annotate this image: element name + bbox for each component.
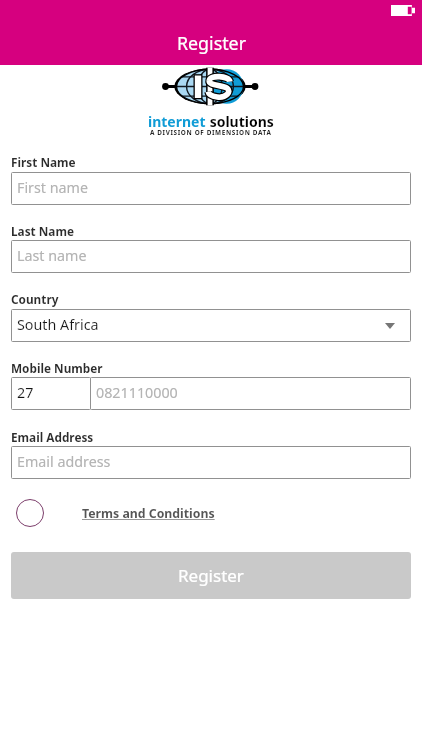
button[interactable]: First name [11, 172, 411, 205]
staticText: Register [177, 31, 246, 55]
staticText: First name [17, 178, 89, 197]
button[interactable]: Register [11, 552, 411, 599]
button[interactable]: Email address [11, 446, 411, 479]
staticText: 27 [17, 383, 34, 402]
staticText: Country [11, 291, 59, 307]
staticText: Terms and Conditions [82, 505, 215, 522]
button[interactable]: Accept terms and conditions [16, 499, 44, 527]
staticText: 0821110000 [96, 383, 178, 402]
button[interactable]: 0821110000 [90, 377, 411, 410]
button[interactable]: South Africa [11, 309, 411, 342]
staticText: Last Name [11, 223, 74, 239]
other: Battery [391, 5, 415, 16]
staticText: A DIVISION OF DIMENSION DATA [150, 128, 272, 137]
staticText: Mobile Number [11, 360, 103, 376]
staticText: Email Address [11, 429, 94, 445]
staticText: South Africa [17, 315, 99, 334]
staticText: Register [178, 564, 244, 587]
staticText: solutions [206, 112, 274, 131]
button[interactable]: 27 [11, 377, 91, 410]
button[interactable]: Terms and Conditions [82, 505, 215, 522]
button[interactable]: Last name [11, 240, 411, 273]
staticText: internet [148, 112, 206, 131]
staticText: First Name [11, 154, 76, 170]
staticText: Last name [17, 246, 87, 265]
staticText: Email address [17, 452, 111, 471]
